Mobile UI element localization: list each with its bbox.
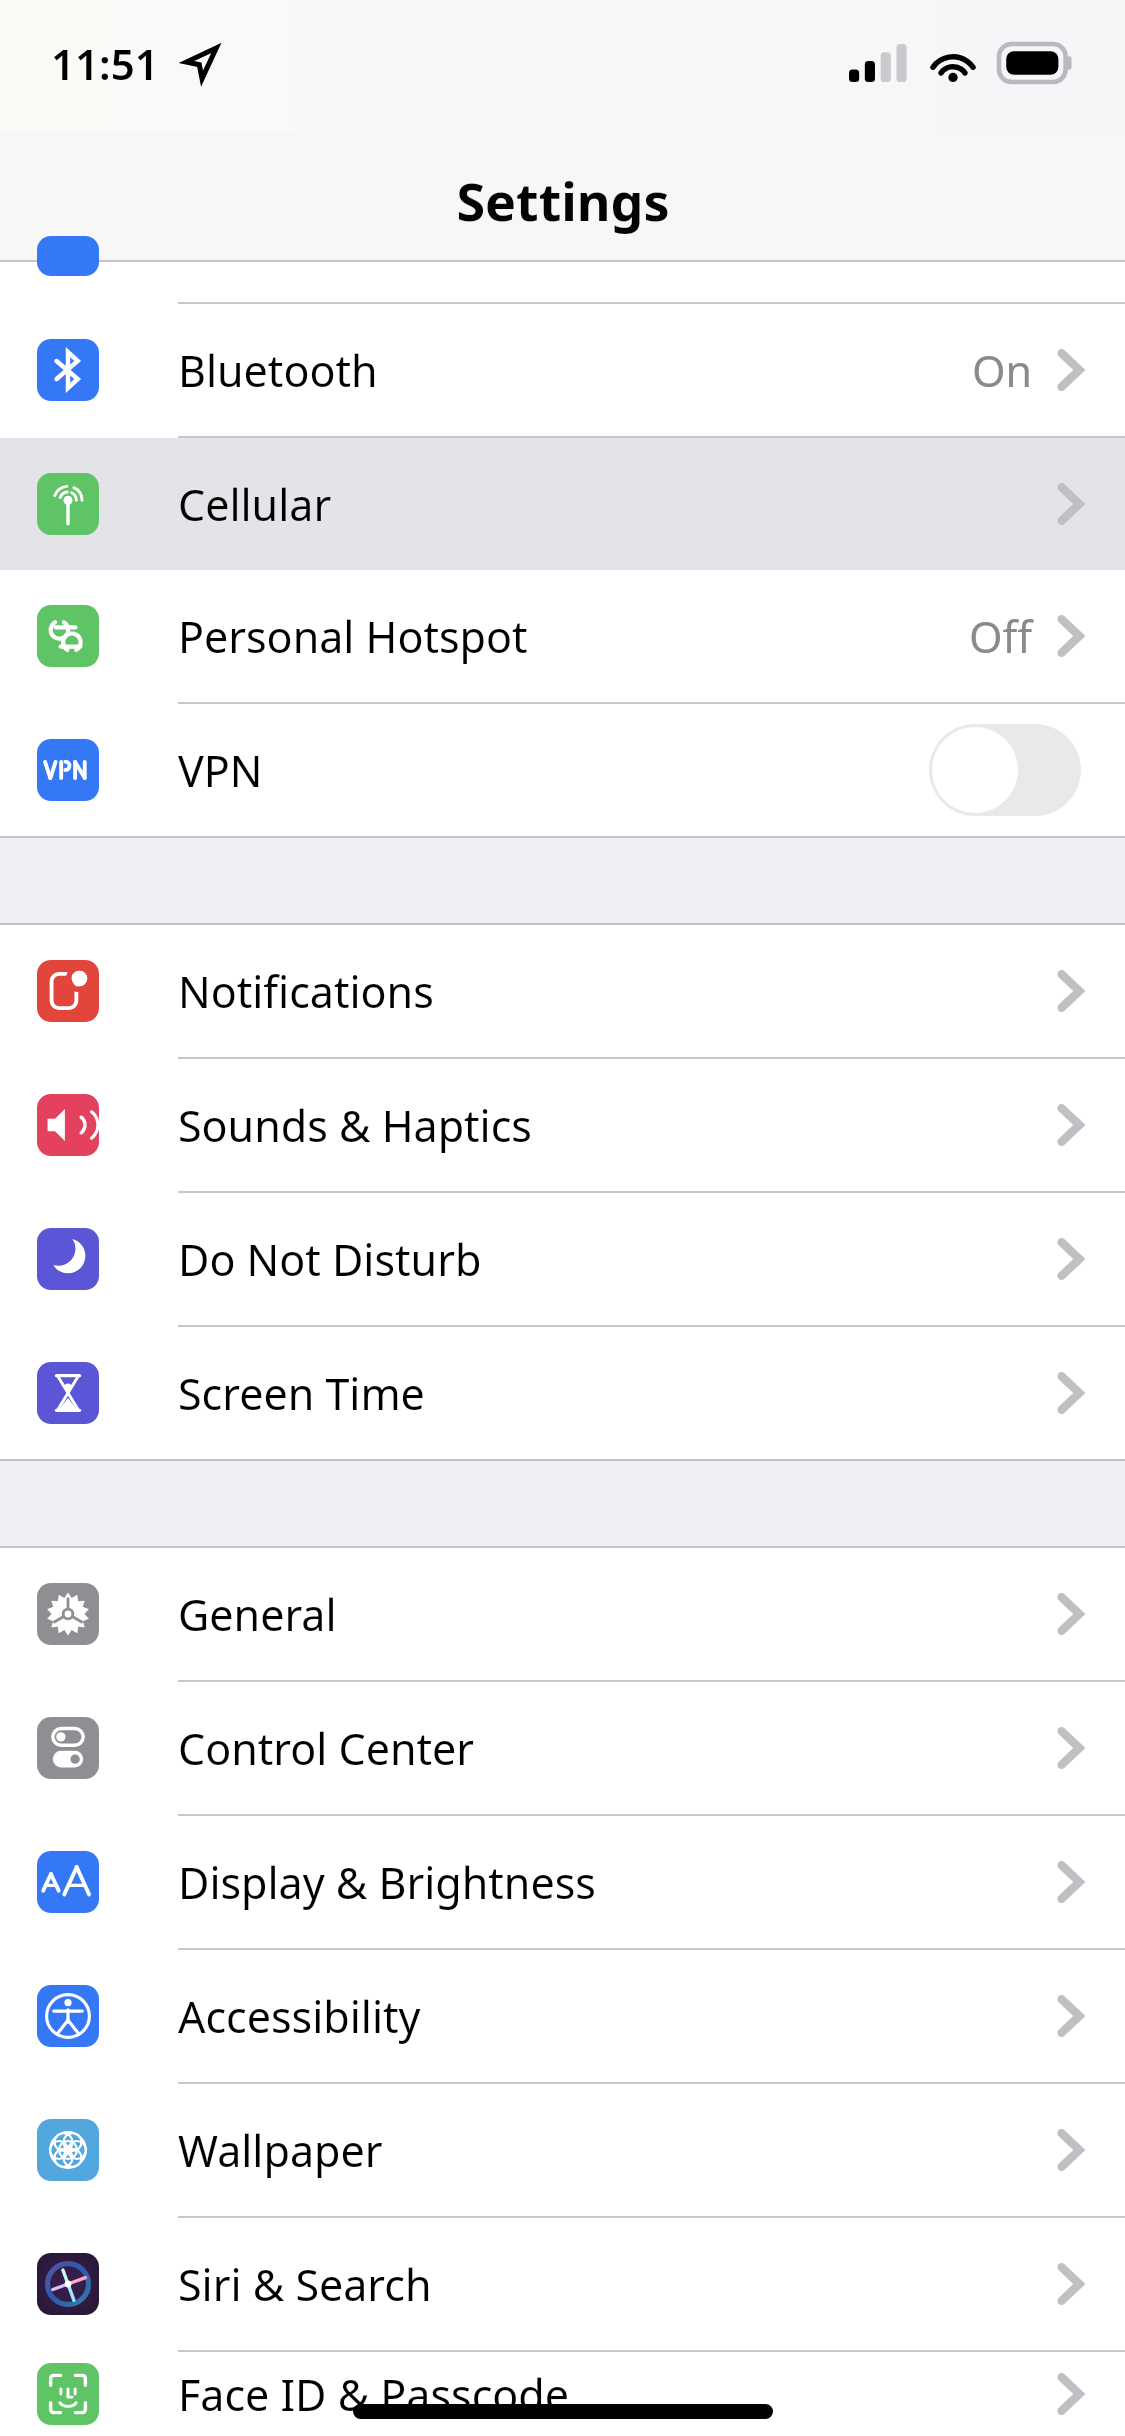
staticText: Sounds & Haptics	[178, 1096, 532, 1155]
button[interactable]: Notifications	[0, 925, 1125, 1057]
staticText: VPN	[178, 741, 263, 800]
staticText: Siri & Search	[178, 2255, 432, 2314]
other: Open Siri & Search	[1059, 2265, 1081, 2303]
staticText: Control Center	[178, 1719, 475, 1778]
button[interactable]: Accessibility	[0, 1950, 1125, 2082]
staticText: Personal Hotspot	[178, 607, 528, 666]
button[interactable]: Siri & Search	[0, 2218, 1125, 2350]
button[interactable]: Face ID & Passcode	[0, 2352, 1125, 2436]
button[interactable]: Display & Brightness	[0, 1816, 1125, 1948]
button[interactable]: Sounds & Haptics	[0, 1059, 1125, 1191]
other: Open Wallpaper	[1059, 2131, 1081, 2169]
other: Open Bluetooth	[1059, 351, 1081, 389]
staticText: Settings	[456, 165, 670, 236]
button[interactable]: VPN	[0, 704, 1125, 836]
staticText: Screen Time	[178, 1364, 425, 1423]
staticText: Accessibility	[178, 1987, 421, 2046]
other: Open Cellular	[1059, 485, 1081, 523]
staticText: Wallpaper	[178, 2121, 383, 2180]
staticText: On	[972, 341, 1033, 400]
staticText: Off	[969, 607, 1033, 666]
button[interactable]: Cellular	[0, 438, 1125, 570]
other: Open Screen Time	[1059, 1374, 1081, 1412]
button[interactable]: Control Center	[0, 1682, 1125, 1814]
staticText: Cellular	[178, 475, 332, 534]
other: Open Personal Hotspot	[1059, 617, 1081, 655]
button[interactable]: Bluetooth	[0, 304, 1125, 436]
other: Open Do Not Disturb	[1059, 1240, 1081, 1278]
staticText: General	[178, 1585, 337, 1644]
button[interactable]: Do Not Disturb	[0, 1193, 1125, 1325]
other: Open Display & Brightness	[1059, 1863, 1081, 1901]
staticText: Do Not Disturb	[178, 1230, 482, 1289]
other: Open Accessibility	[1059, 1997, 1081, 2035]
button[interactable]: General	[0, 1548, 1125, 1680]
button[interactable]: Personal Hotspot	[0, 570, 1125, 702]
button[interactable]: VPN toggle, off	[929, 724, 1081, 816]
button[interactable]: Wallpaper	[0, 2084, 1125, 2216]
button[interactable]: Screen Time	[0, 1327, 1125, 1459]
other: Open Face ID & Passcode	[1059, 2375, 1081, 2413]
other: Open Control Center	[1059, 1729, 1081, 1767]
other: Open General	[1059, 1595, 1081, 1633]
staticText: 11:51	[51, 35, 159, 92]
staticText: Bluetooth	[178, 341, 378, 400]
other: Open Sounds & Haptics	[1059, 1106, 1081, 1144]
staticText: Display & Brightness	[178, 1853, 596, 1912]
other: Open Notifications	[1059, 972, 1081, 1010]
staticText: Notifications	[178, 962, 434, 1021]
button[interactable]	[0, 262, 1125, 302]
staticText: Face ID & Passcode	[178, 2365, 569, 2424]
